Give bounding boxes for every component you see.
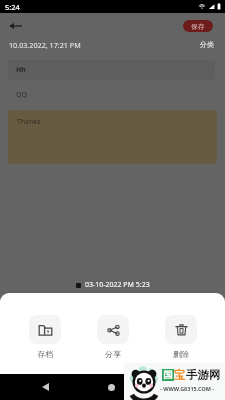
staticText: 删除 bbox=[173, 349, 189, 359]
button[interactable]: 分类 bbox=[200, 40, 214, 49]
button[interactable]: Hh bbox=[8, 60, 215, 80]
button[interactable]: QQ bbox=[8, 88, 215, 102]
button[interactable]: Home bbox=[103, 379, 119, 395]
button[interactable]: Back bbox=[37, 379, 53, 395]
button[interactable]: 存档 bbox=[29, 315, 61, 359]
staticText: 保存 bbox=[191, 22, 205, 31]
staticText: 手游网 bbox=[186, 368, 221, 382]
staticText: QQ bbox=[16, 90, 27, 100]
button[interactable]: 保存 bbox=[183, 20, 213, 32]
staticText: - WWW.G8315.COM - bbox=[160, 385, 215, 392]
staticText: 存档 bbox=[37, 349, 53, 359]
staticText: 分享 bbox=[105, 349, 121, 359]
button[interactable]: 删除 bbox=[165, 315, 197, 359]
staticText: 10.03.2022, 17:21 PM bbox=[9, 40, 81, 50]
staticText: Hh bbox=[16, 65, 26, 75]
button[interactable]: Recents bbox=[170, 379, 186, 395]
button[interactable]: Back bbox=[4, 15, 26, 37]
staticText: Thanks bbox=[17, 117, 41, 127]
staticText: 国 bbox=[163, 369, 173, 381]
staticText: 宝 bbox=[174, 368, 186, 382]
staticText: 03-10-2022 PM 5:23 bbox=[85, 280, 150, 290]
staticText: 5:24 bbox=[5, 2, 20, 12]
button[interactable]: 分享 bbox=[97, 315, 129, 359]
staticText: 分类 bbox=[200, 40, 214, 49]
